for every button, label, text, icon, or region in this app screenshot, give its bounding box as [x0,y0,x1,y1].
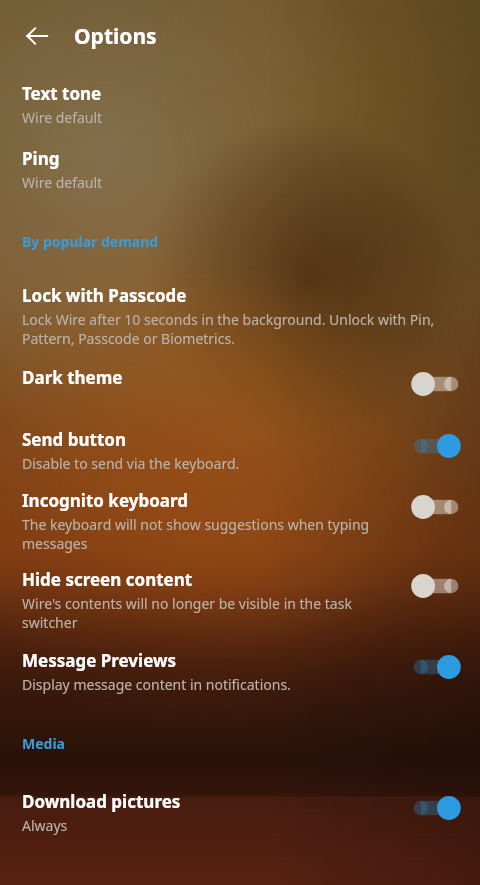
button[interactable]: Send button [0,428,480,473]
staticText: Text tone [22,82,102,105]
button[interactable]: Lock with Passcode [0,284,480,348]
button[interactable]: Incognito keyboard [0,489,480,553]
staticText: Wire default [22,173,103,192]
staticText: Display message content in notifications… [22,675,291,694]
button[interactable]: Ping [0,147,480,192]
button[interactable]: Message Previews [0,649,480,694]
staticText: Lock with Passcode [22,284,187,307]
button[interactable]: Text tone [0,82,480,127]
staticText: Dark theme [22,366,123,389]
button[interactable]: Hide screen content [0,568,480,632]
staticText: Hide screen content [22,568,193,591]
button[interactable]: Download pictures [0,790,480,835]
staticText: Message Previews [22,649,177,672]
button[interactable]: Off [408,568,464,604]
staticText: Incognito keyboard [22,489,188,512]
staticText: Send button [22,428,126,451]
staticText: By popular demand [22,232,159,251]
staticText: The keyboard will not show suggestions w… [22,515,400,553]
button[interactable]: Off [408,489,464,525]
staticText: Ping [22,147,60,170]
staticText: Wire's contents will no longer be visibl… [22,594,400,632]
staticText: Wire default [22,108,103,127]
button[interactable]: On [408,649,464,685]
staticText: Download pictures [22,790,181,813]
staticText: Media [22,734,65,753]
button[interactable]: Off [408,366,464,402]
staticText: Always [22,816,68,835]
button[interactable]: Back [13,12,61,60]
button[interactable]: Dark theme [0,366,480,402]
staticText: Disable to send via the keyboard. [22,454,240,473]
staticText: Options [74,22,157,51]
button[interactable]: On [408,790,464,826]
button[interactable]: On [408,428,464,464]
staticText: Lock Wire after 10 seconds in the backgr… [22,310,464,348]
